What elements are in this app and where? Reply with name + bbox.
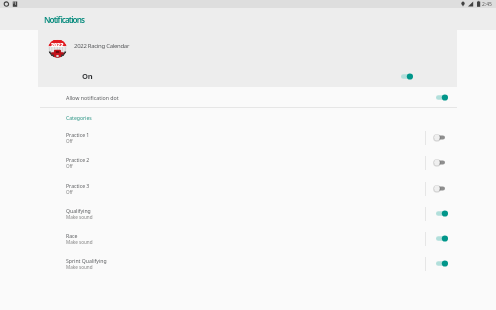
staticText: Notifications: [44, 14, 85, 25]
staticText: Qualifying: [66, 207, 91, 214]
button[interactable]: Toggle on: [436, 233, 448, 244]
button[interactable]: Toggle on: [436, 208, 448, 219]
staticText: Off: [66, 163, 73, 169]
button[interactable]: Toggle off: [434, 157, 445, 168]
staticText: Make sound: [66, 264, 93, 270]
button[interactable]: Toggle on: [401, 71, 413, 82]
button[interactable]: 2022: [38, 30, 457, 65]
staticText: Off: [66, 138, 73, 144]
staticText: 2022 Racing Calendar: [74, 42, 130, 50]
staticText: 2:45: [482, 1, 492, 8]
staticText: Race: [66, 232, 78, 239]
button[interactable]: Toggle on: [436, 258, 448, 269]
staticText: Make sound: [66, 214, 93, 220]
button[interactable]: Practice 2: [38, 153, 457, 172]
button[interactable]: Practice 1: [38, 128, 457, 147]
staticText: Sprint Qualifying: [66, 257, 107, 264]
staticText: On: [82, 71, 93, 81]
button[interactable]: Sprint Qualifying: [38, 254, 457, 273]
button[interactable]: Allow notification dot: [38, 87, 457, 107]
staticText: Allow notification dot: [66, 94, 119, 101]
button[interactable]: Toggle on: [436, 92, 448, 103]
button[interactable]: Toggle off: [434, 132, 445, 143]
button[interactable]: Qualifying: [38, 204, 457, 223]
staticText: Off: [66, 189, 73, 195]
staticText: Make sound: [66, 239, 93, 245]
button[interactable]: Race: [38, 229, 457, 248]
button[interactable]: Practice 3: [38, 179, 457, 198]
button[interactable]: On: [38, 65, 457, 87]
staticText: Practice 3: [66, 182, 90, 189]
staticText: Categories: [66, 115, 92, 122]
staticText: 2022: [51, 41, 64, 48]
staticText: Practice 2: [66, 156, 90, 163]
staticText: Practice 1: [66, 131, 90, 138]
button[interactable]: Toggle off: [434, 183, 445, 194]
